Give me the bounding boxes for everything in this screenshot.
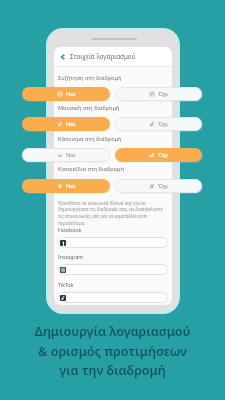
staticText: Ναι bbox=[66, 120, 76, 128]
button[interactable]: Όχι bbox=[115, 179, 202, 193]
button[interactable] bbox=[58, 292, 168, 303]
staticText: Όχι bbox=[158, 120, 169, 128]
button[interactable]: Back bbox=[59, 53, 67, 61]
staticText: Ναι bbox=[66, 90, 76, 98]
staticText: Δημιουργία λογαριασμού & ορισμός προτιμή… bbox=[0, 323, 225, 379]
button[interactable]: Ναι bbox=[22, 179, 110, 193]
staticText: Κατοικίδια στη διαδρομή bbox=[58, 165, 124, 173]
staticText: Όχι bbox=[158, 182, 169, 190]
button[interactable]: Όχι bbox=[115, 148, 202, 162]
staticText: Όχι bbox=[158, 90, 169, 98]
button[interactable] bbox=[58, 264, 168, 275]
staticText: Facebook bbox=[58, 226, 82, 233]
staticText: Ναι bbox=[66, 151, 76, 159]
button[interactable]: Ναι bbox=[22, 117, 110, 131]
button[interactable] bbox=[58, 237, 168, 248]
staticText: Instagram bbox=[58, 253, 84, 260]
staticText: Συζήτηση στη διαδρομή bbox=[58, 74, 122, 82]
staticText: Κάπνισμα στη διαδρομή bbox=[58, 135, 122, 143]
button[interactable]: Ναι bbox=[22, 87, 110, 101]
button[interactable]: Όχι bbox=[115, 87, 202, 101]
staticText: TikTok bbox=[58, 281, 74, 288]
staticText: Μουσική στη διαδρομή bbox=[58, 104, 120, 112]
staticText: Ναι bbox=[66, 182, 76, 190]
staticText: Όχι bbox=[158, 151, 169, 159]
staticText: Προσθέστε τα κοινωνικά δίκτυά σας για να… bbox=[58, 200, 168, 227]
staticText: Στοιχεία λογαριασμού bbox=[70, 52, 136, 61]
button[interactable]: Όχι bbox=[115, 117, 202, 131]
button[interactable]: Ναι bbox=[22, 148, 110, 162]
